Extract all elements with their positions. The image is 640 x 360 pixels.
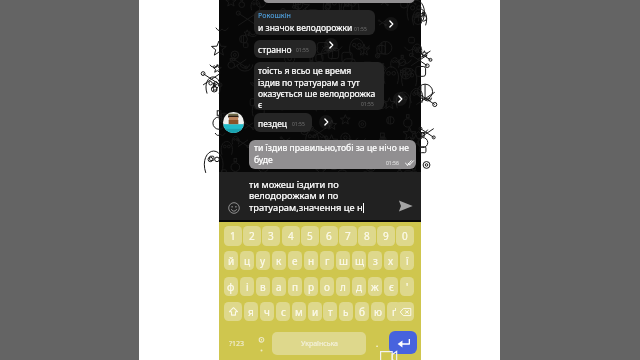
button[interactable]: с — [276, 302, 290, 321]
staticText: пездец — [258, 118, 288, 130]
button[interactable]: ґ — [387, 302, 401, 321]
button[interactable]: 5 — [301, 226, 319, 246]
staticText: 01:55 — [354, 26, 367, 33]
button[interactable]: з — [368, 251, 382, 270]
button[interactable]: п — [288, 277, 302, 296]
button[interactable]: . — [369, 332, 385, 355]
button[interactable]: е — [288, 251, 302, 270]
staticText: 4 — [288, 229, 294, 243]
button[interactable]: і — [240, 277, 254, 296]
staticText: 9 — [383, 229, 389, 243]
button[interactable]: у — [256, 251, 270, 270]
button[interactable]: ї — [400, 251, 414, 270]
staticText: 01:56 — [386, 160, 399, 167]
button[interactable]: б — [355, 302, 369, 321]
button[interactable]: ф — [224, 277, 238, 296]
staticText: ч — [264, 305, 270, 319]
staticText: т — [328, 305, 333, 319]
button[interactable]: д — [352, 277, 366, 296]
staticText: г — [325, 254, 330, 268]
staticText: ґ — [392, 305, 397, 319]
staticText: ш — [339, 254, 348, 268]
button[interactable]: Українська — [272, 332, 366, 355]
button[interactable]: м — [292, 302, 306, 321]
button[interactable]: ?123 — [222, 332, 251, 355]
button[interactable]: и — [308, 302, 322, 321]
button[interactable]: 0 — [396, 226, 414, 246]
button[interactable]: х — [384, 251, 398, 270]
staticText: Рокошкін — [258, 11, 291, 21]
button[interactable]: н — [304, 251, 318, 270]
staticText: 5 — [307, 229, 313, 243]
button[interactable]: т — [323, 302, 337, 321]
staticText: 01:55 — [292, 121, 305, 128]
button[interactable]: Forward message — [319, 115, 333, 129]
button[interactable]: ж — [368, 277, 382, 296]
button[interactable]: Emoji — [228, 202, 240, 214]
button[interactable]: а — [272, 277, 286, 296]
staticText: 01:55 — [361, 101, 374, 108]
staticText: ф — [227, 280, 235, 294]
button[interactable]: Backspace — [396, 302, 414, 321]
staticText: к — [276, 254, 282, 268]
button[interactable]: Forward message — [393, 92, 407, 106]
button[interactable]: тоість я всьо це время їздив по тратуара… — [254, 62, 384, 110]
button[interactable]: Shift — [224, 302, 242, 321]
staticText: 1 — [230, 229, 236, 243]
staticText: х — [388, 254, 394, 268]
staticText: у — [260, 254, 266, 268]
staticText: ти можеш їздити по велодорожкам и по тра… — [249, 178, 363, 214]
button[interactable]: Forward message — [384, 17, 398, 31]
staticText: я — [248, 305, 254, 319]
staticText: щ — [355, 254, 364, 268]
button[interactable]: к — [272, 251, 286, 270]
button[interactable]: я — [244, 302, 258, 321]
staticText: и значок велодорожки — [258, 22, 353, 34]
button[interactable]: Send — [395, 196, 415, 216]
staticText: п — [292, 280, 299, 294]
button[interactable]: Enter — [389, 331, 417, 354]
button[interactable]: ш — [336, 251, 350, 270]
button[interactable]: ти їздив правильно,тобі за це нічо не бу… — [249, 140, 416, 169]
staticText: . — [376, 338, 379, 349]
button[interactable]: ь — [339, 302, 353, 321]
button[interactable]: пездец — [254, 113, 312, 132]
staticText: м — [295, 305, 303, 319]
staticText: 6 — [326, 229, 332, 243]
staticText: 01:55 — [296, 47, 309, 54]
staticText: 8 — [364, 229, 370, 243]
button[interactable]: р — [304, 277, 318, 296]
button[interactable]: Рокошкін — [254, 10, 375, 35]
staticText: и — [312, 305, 319, 319]
button[interactable]: й — [224, 251, 238, 270]
button[interactable]: 8 — [358, 226, 376, 246]
button[interactable]: 6 — [320, 226, 338, 246]
button[interactable]: Keyboard settings — [253, 332, 269, 355]
button[interactable]: 3 — [262, 226, 280, 246]
button[interactable]: л — [336, 277, 350, 296]
staticText: 2 — [249, 229, 255, 243]
button[interactable]: г — [320, 251, 334, 270]
button[interactable]: Profile photo — [223, 112, 244, 133]
staticText: ї — [406, 254, 409, 268]
staticText: б — [359, 305, 365, 319]
button[interactable]: Forward message — [324, 38, 338, 52]
button[interactable]: ' — [400, 277, 414, 296]
button[interactable]: 4 — [282, 226, 300, 246]
staticText: є — [389, 280, 394, 294]
button[interactable]: 9 — [377, 226, 395, 246]
button[interactable]: в — [256, 277, 270, 296]
button[interactable]: ю — [371, 302, 385, 321]
staticText: д — [356, 280, 363, 294]
button[interactable]: странно — [254, 40, 316, 58]
button[interactable]: 1 — [224, 226, 242, 246]
button[interactable]: о — [320, 277, 334, 296]
button[interactable]: 7 — [339, 226, 357, 246]
staticText: а — [276, 280, 282, 294]
button[interactable]: 2 — [243, 226, 261, 246]
button[interactable]: є — [384, 277, 398, 296]
staticText: ?123 — [229, 339, 245, 349]
button[interactable]: ц — [240, 251, 254, 270]
button[interactable]: щ — [352, 251, 366, 270]
button[interactable]: ч — [260, 302, 274, 321]
